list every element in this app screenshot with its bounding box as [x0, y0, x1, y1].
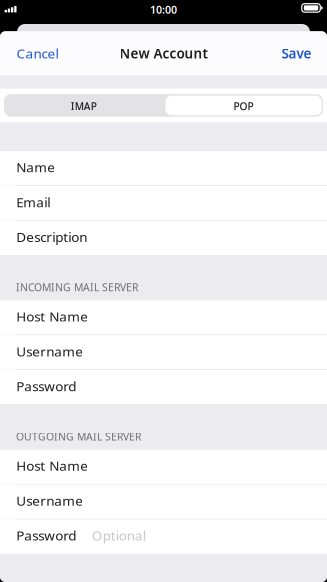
staticText: Username: [16, 342, 83, 360]
staticText: Optional: [92, 526, 146, 544]
button[interactable]: Save: [269, 31, 327, 75]
staticText: Name: [16, 158, 55, 176]
button[interactable]: Username: [0, 335, 327, 370]
button[interactable]: IMAP: [4, 94, 163, 117]
button[interactable]: Name: [0, 151, 327, 185]
staticText: Username: [16, 491, 83, 510]
button[interactable]: Host Name: [0, 300, 327, 335]
staticText: Password: [16, 377, 76, 395]
button[interactable]: Username: [0, 484, 327, 519]
staticText: Host Name: [16, 456, 88, 475]
staticText: 10:00: [150, 2, 177, 17]
staticText: Host Name: [16, 307, 88, 325]
button[interactable]: POP: [163, 96, 323, 115]
staticText: Description: [16, 228, 87, 246]
staticText: Email: [16, 193, 50, 211]
button[interactable]: Password: [0, 519, 327, 554]
button[interactable]: Email: [0, 186, 327, 220]
button[interactable]: Host Name: [0, 450, 327, 484]
staticText: INCOMING MAIL SERVER: [16, 280, 138, 294]
staticText: New Account: [119, 44, 207, 62]
button[interactable]: Password: [0, 370, 327, 404]
staticText: Cancel: [16, 44, 58, 62]
button[interactable]: Description: [0, 221, 327, 255]
staticText: POP: [234, 99, 254, 113]
staticText: OUTGOING MAIL SERVER: [16, 429, 141, 444]
staticText: Save: [281, 44, 311, 62]
staticText: Password: [16, 526, 76, 544]
button[interactable]: Cancel: [0, 31, 70, 75]
staticText: IMAP: [71, 99, 97, 113]
